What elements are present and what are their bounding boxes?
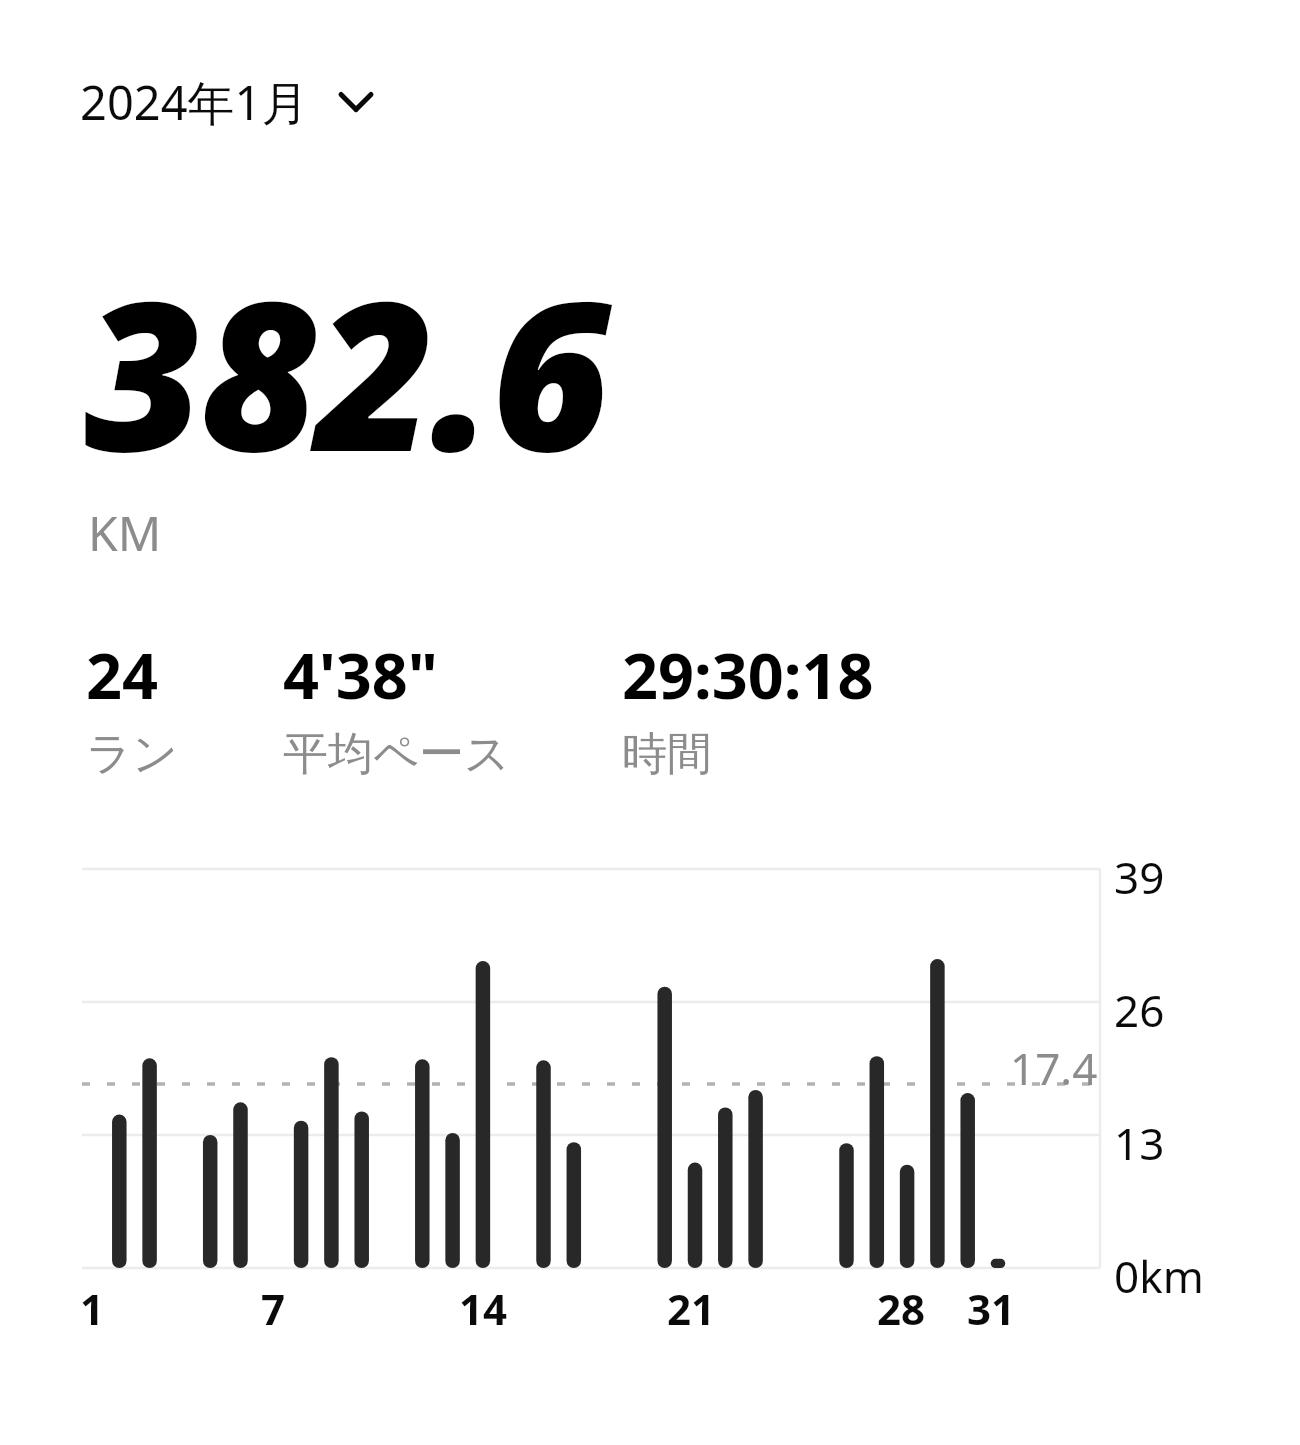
staticText: 24 (86, 632, 159, 718)
staticText: 時間 (622, 726, 712, 783)
other: Change month (331, 77, 381, 127)
staticText: 382.6 (84, 232, 608, 511)
staticText: 4'38" (283, 632, 439, 718)
staticText: 29:30:18 (622, 632, 874, 718)
staticText: 14 (459, 1280, 508, 1337)
staticText: 13 (1114, 1113, 1165, 1173)
staticText: 21 (667, 1280, 716, 1337)
staticText: 17.4 (1010, 1038, 1098, 1098)
staticText: 7 (261, 1280, 286, 1337)
button[interactable]: 29:30:18 (622, 632, 874, 783)
button[interactable]: 2024年1月 (80, 70, 381, 134)
button[interactable]: 39 (0, 855, 1300, 1335)
staticText: 0km (1114, 1246, 1204, 1306)
staticText: ラン (86, 726, 179, 783)
button[interactable]: 24 (86, 632, 179, 783)
staticText: 平均ペース (283, 726, 511, 783)
staticText: 28 (877, 1280, 926, 1337)
staticText: KM (88, 500, 162, 565)
staticText: 39 (1114, 847, 1165, 907)
staticText: 26 (1114, 980, 1165, 1040)
staticText: 1 (80, 1280, 105, 1337)
staticText: 31 (967, 1280, 1016, 1337)
staticText: 2024年1月 (80, 70, 309, 134)
button[interactable]: 4'38" (283, 632, 511, 783)
